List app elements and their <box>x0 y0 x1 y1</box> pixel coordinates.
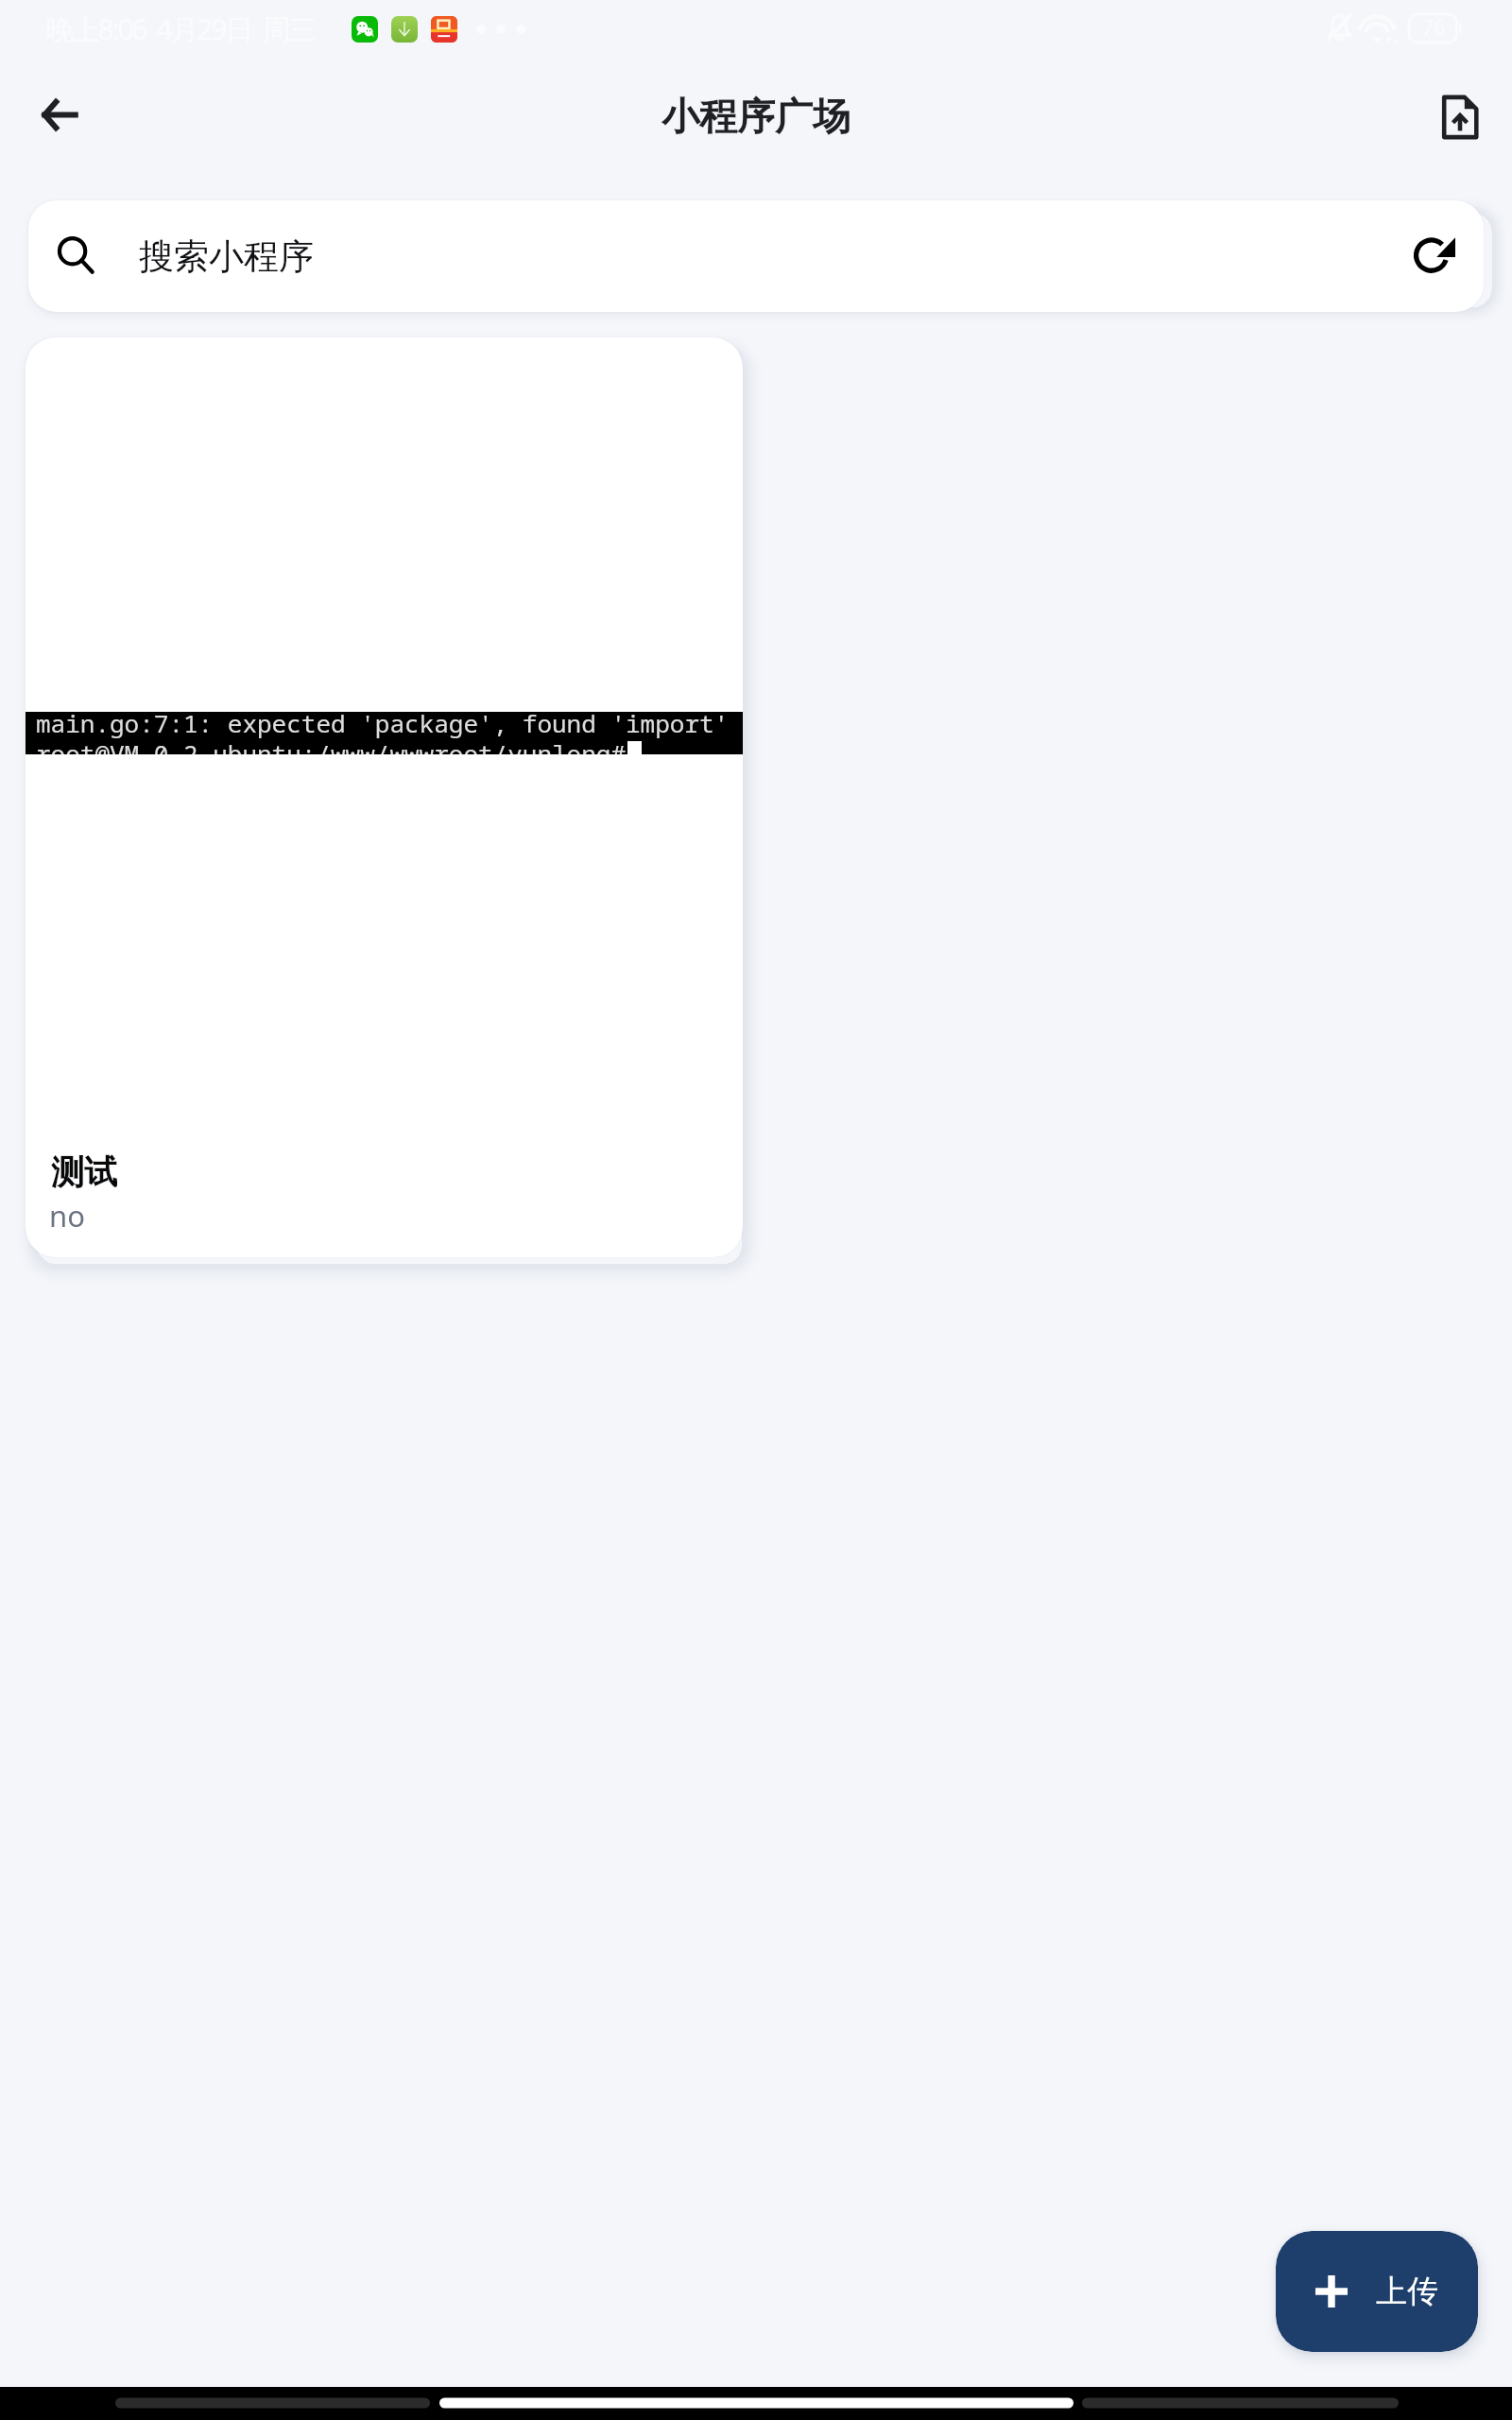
staticText: 测试 <box>51 1151 117 1193</box>
button[interactable]: Back <box>24 78 95 150</box>
button[interactable]: Refresh <box>1394 216 1473 296</box>
staticText: no <box>49 1196 85 1236</box>
staticText: 小程序广场 <box>661 93 850 140</box>
staticText: root@VM-0-2-ubuntu:/www/wwwroot/yunlong# <box>36 736 627 754</box>
staticText: main.go:7:1: expected 'package', found '… <box>36 712 730 739</box>
button[interactable]: Upload file <box>1424 81 1496 153</box>
button[interactable]: 搜索小程序 <box>28 200 1484 312</box>
button[interactable]: main.go:7:1: expected 'package', found '… <box>26 337 743 1257</box>
staticText: 上传 <box>1376 2272 1438 2311</box>
staticText: 搜索小程序 <box>139 234 314 279</box>
button[interactable]: 上传 <box>1276 2231 1478 2352</box>
